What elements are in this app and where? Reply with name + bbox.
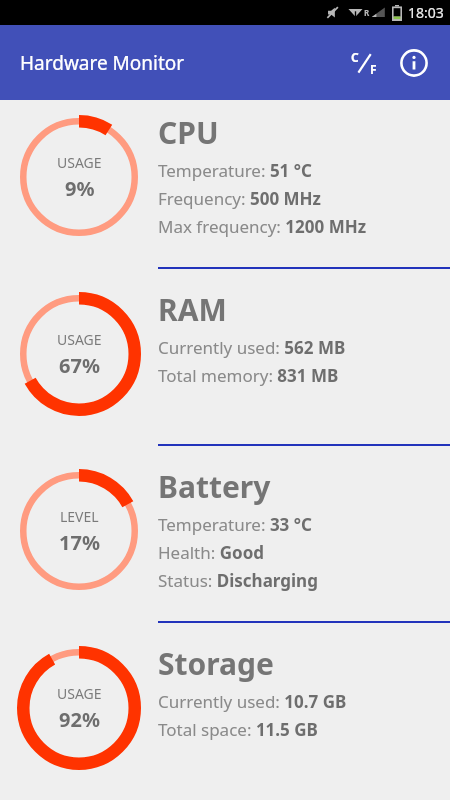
staticText: 67% [59, 352, 100, 379]
staticText: CPU [158, 112, 219, 153]
staticText: 17% [59, 529, 100, 556]
button[interactable]: LEVEL [0, 454, 450, 631]
staticText: Max frequency: 1200 MHz [158, 215, 367, 238]
staticText: USAGE [57, 684, 102, 703]
button[interactable]: About [392, 41, 436, 85]
staticText: Total memory: 831 MB [158, 364, 339, 387]
button[interactable]: USAGE [0, 277, 450, 454]
button[interactable]: Toggle Celsius Fahrenheit [342, 41, 386, 85]
staticText: RAM [158, 289, 227, 330]
staticText: Health: Good [158, 541, 265, 564]
staticText: USAGE [57, 330, 102, 349]
staticText: Currently used: 562 MB [158, 336, 346, 359]
staticText: Total space: 11.5 GB [158, 718, 318, 741]
staticText: F [370, 61, 377, 77]
staticText: Currently used: 10.7 GB [158, 690, 347, 713]
staticText: Frequency: 500 MHz [158, 187, 321, 210]
staticText: Temperature: 33 °C [158, 513, 312, 536]
staticText: LEVEL [60, 507, 99, 526]
staticText: Storage [158, 643, 274, 684]
button[interactable]: USAGE [0, 100, 450, 277]
staticText: USAGE [57, 153, 102, 172]
staticText: Battery [158, 466, 271, 507]
staticText: C [351, 49, 359, 65]
staticText: 9% [65, 175, 95, 202]
staticText: Status: Discharging [158, 569, 318, 592]
button[interactable]: USAGE [0, 631, 450, 800]
staticText: R [364, 7, 370, 18]
staticText: Hardware Monitor [20, 50, 185, 76]
staticText: Temperature: 51 °C [158, 159, 312, 182]
staticText: 18:03 [408, 3, 444, 22]
staticText: 92% [59, 706, 100, 733]
